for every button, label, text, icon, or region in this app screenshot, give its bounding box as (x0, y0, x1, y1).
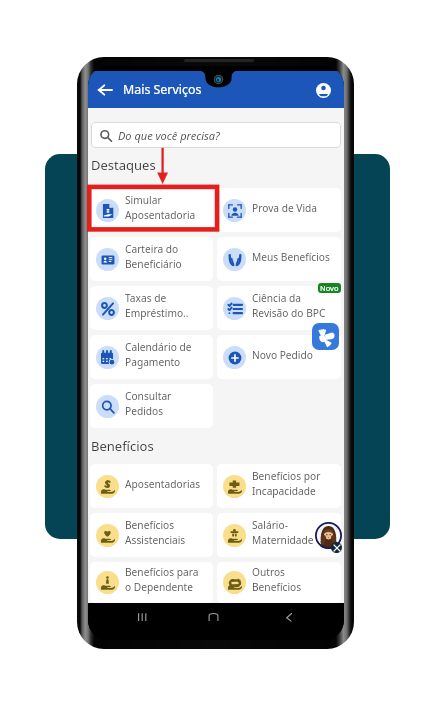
button[interactable]: Novo (318, 283, 341, 293)
button[interactable]: Ciência da Revisão do BPC (217, 286, 341, 330)
button[interactable]: Fechar (331, 542, 342, 553)
button[interactable]: Outros Benefícios (217, 562, 341, 603)
button[interactable]: Benefícios Assistenciais (90, 513, 213, 557)
button[interactable]: Voltar (95, 80, 115, 100)
button[interactable]: Novo Pedido (217, 335, 341, 379)
button[interactable]: Carteira do Beneficiário (90, 237, 213, 281)
button[interactable]: Simular Aposentadoria (90, 188, 213, 232)
button[interactable]: Consultar Pedidos (90, 384, 213, 428)
staticText: Salário- Maternidade (252, 518, 314, 547)
staticText: Prova de Vida (252, 201, 318, 215)
staticText: Benefícios para o Dependente (125, 565, 199, 594)
staticText: Benefícios por Incapacidade (252, 469, 321, 498)
button[interactable]: Salário- Maternidade (217, 513, 341, 557)
button[interactable]: Prova de Vida (217, 188, 341, 232)
button[interactable]: Taxas de Empréstimo.. (90, 286, 213, 330)
staticText: Calendário de Pagamento (125, 340, 192, 369)
staticText: Do que você precisa? (118, 128, 220, 143)
button[interactable]: Meus Benefícios (217, 237, 341, 281)
staticText: Destaques (91, 156, 156, 174)
button[interactable]: Do que você precisa? (91, 122, 341, 148)
button[interactable]: Aposentadorias (90, 464, 213, 508)
staticText: Novo Pedido (252, 348, 313, 362)
button[interactable]: Calendário de Pagamento (90, 335, 213, 379)
staticText: Taxas de Empréstimo.. (125, 291, 189, 320)
staticText: Mais Serviços (123, 81, 202, 98)
staticText: Consultar Pedidos (125, 389, 172, 418)
button[interactable]: Benefícios por Incapacidade (217, 464, 341, 508)
staticText: Ciência da Revisão do BPC (252, 291, 326, 320)
staticText: Benefícios Assistenciais (125, 518, 186, 547)
staticText: Meus Benefícios (252, 250, 330, 264)
button[interactable]: Libras (312, 323, 339, 350)
staticText: Aposentadorias (125, 477, 201, 491)
staticText: Novo (320, 283, 339, 293)
staticText: Outros Benefícios (252, 565, 302, 594)
staticText: Carteira do Beneficiário (125, 242, 182, 271)
staticText: Simular Aposentadoria (125, 193, 196, 222)
button[interactable]: Benefícios para o Dependente (90, 562, 213, 603)
button[interactable]: Conta (312, 79, 334, 101)
staticText: Benefícios (91, 437, 154, 455)
